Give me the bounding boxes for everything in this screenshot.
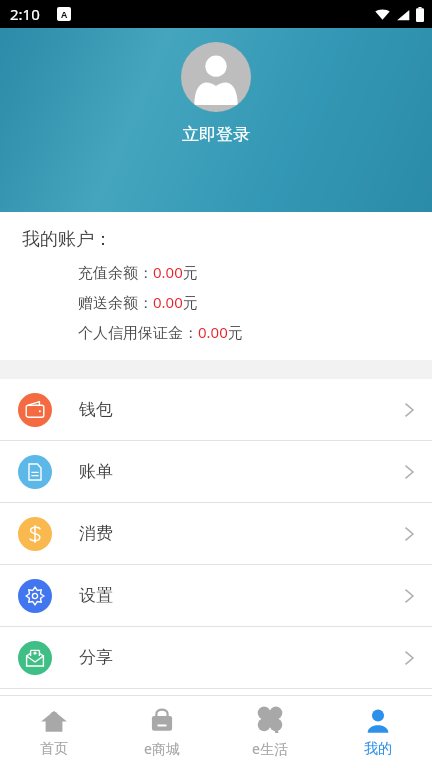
staticText: 钱包 bbox=[79, 399, 113, 420]
staticText: 设置 bbox=[79, 585, 113, 606]
staticText: 账单 bbox=[79, 461, 113, 482]
staticText: 个人信用保证金：0.00元 bbox=[78, 322, 243, 342]
button[interactable]: 账单 bbox=[0, 441, 432, 502]
staticText: e生活 bbox=[252, 739, 288, 758]
staticText: 分享 bbox=[79, 647, 113, 668]
staticText: 我的 bbox=[364, 740, 392, 758]
staticText: 立即登录 bbox=[182, 124, 250, 145]
button[interactable]: 设置 bbox=[0, 565, 432, 626]
staticText: 充值余额：0.00元 bbox=[78, 262, 198, 282]
button[interactable]: 首页 bbox=[0, 707, 108, 758]
staticText: e商城 bbox=[144, 739, 180, 758]
button[interactable]: 立即登录 bbox=[181, 42, 251, 145]
button[interactable]: 钱包 bbox=[0, 379, 432, 440]
staticText: 2:10 bbox=[10, 4, 40, 24]
button[interactable]: e商城 bbox=[108, 706, 216, 758]
staticText: A bbox=[61, 8, 68, 20]
button[interactable]: 我的 bbox=[324, 707, 432, 758]
staticText: 消费 bbox=[79, 523, 113, 544]
button[interactable]: e生活 bbox=[216, 706, 324, 758]
staticText: 我的账户： bbox=[22, 228, 112, 251]
button[interactable]: 消费 bbox=[0, 503, 432, 564]
button[interactable]: 分享 bbox=[0, 627, 432, 688]
staticText: 赠送余额：0.00元 bbox=[78, 292, 198, 312]
staticText: 首页 bbox=[40, 740, 68, 758]
